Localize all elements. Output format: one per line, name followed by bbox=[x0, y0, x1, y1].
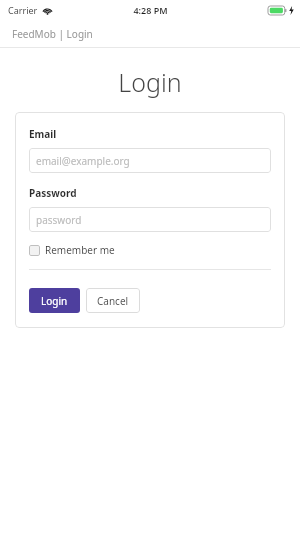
staticText: Password bbox=[29, 186, 77, 200]
button[interactable]: password bbox=[29, 207, 271, 232]
staticText: email@example.org bbox=[36, 154, 130, 168]
button[interactable]: Login bbox=[29, 288, 80, 313]
button[interactable]: Remember me bbox=[29, 243, 115, 257]
button[interactable]: Cancel bbox=[86, 288, 140, 313]
staticText: Remember me bbox=[45, 243, 115, 257]
staticText: password bbox=[36, 213, 82, 227]
button[interactable]: email@example.org bbox=[29, 148, 271, 173]
staticText: FeedMob | Login bbox=[12, 27, 93, 41]
staticText: 4:28 PM bbox=[133, 4, 168, 16]
staticText: Login bbox=[0, 65, 300, 99]
staticText: Cancel bbox=[97, 294, 129, 308]
staticText: Carrier bbox=[8, 4, 38, 16]
staticText: Login bbox=[41, 294, 68, 308]
staticText: Email bbox=[29, 127, 57, 141]
